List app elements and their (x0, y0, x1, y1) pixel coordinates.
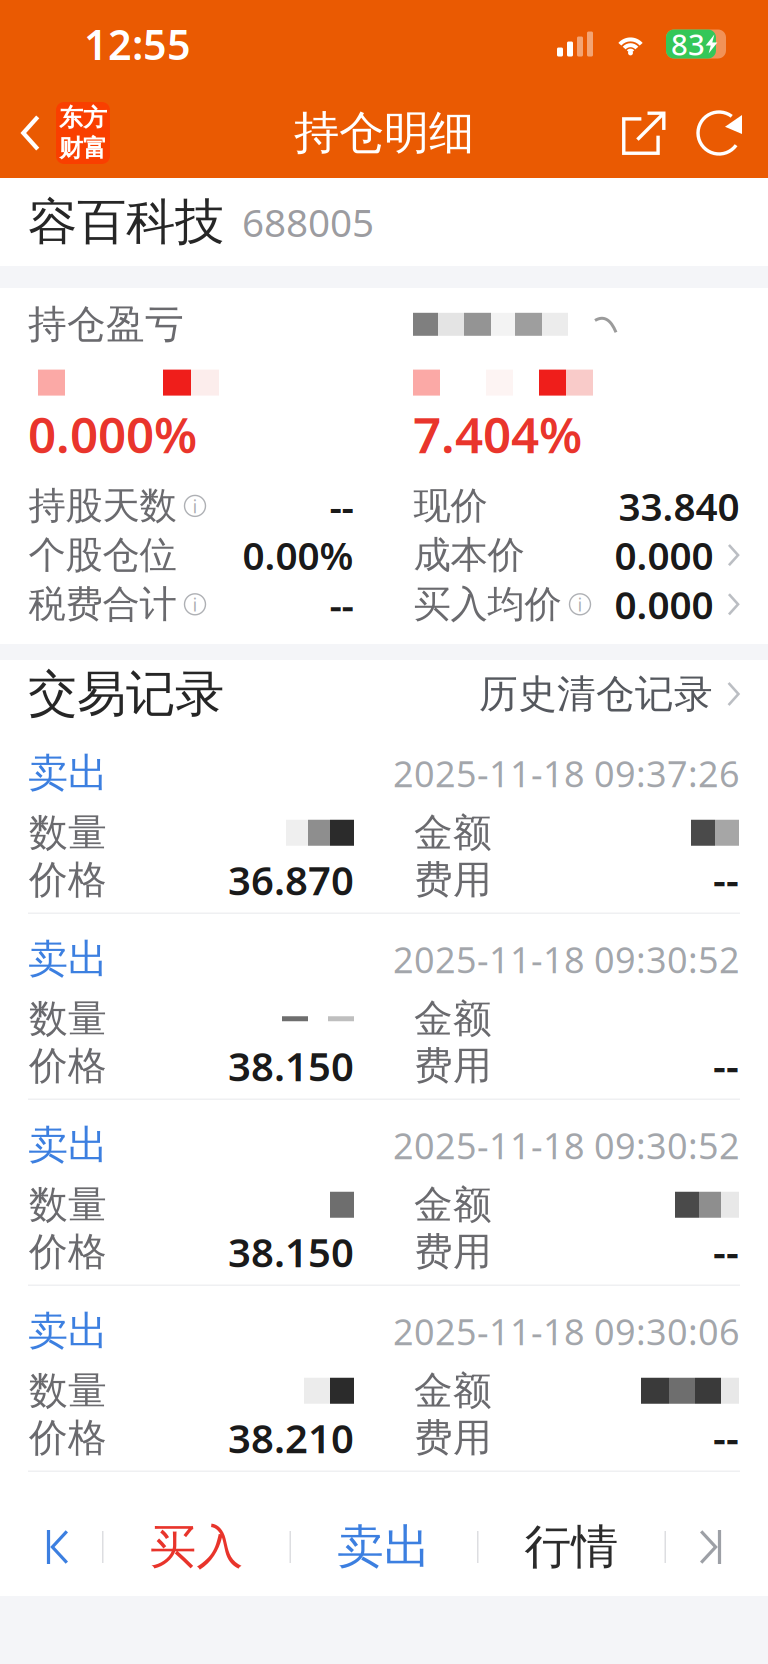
staticText: 38.150 (228, 1225, 354, 1278)
staticText: 数量 (29, 809, 107, 856)
staticText: 38.210 (228, 1411, 354, 1464)
staticText: 金额 (414, 995, 492, 1042)
staticText: 2025-11-18 09:30:52 (393, 1121, 740, 1169)
staticText: 数量 (29, 1181, 107, 1228)
staticText: 卖出 (28, 1121, 108, 1170)
staticText: 38.150 (228, 1039, 354, 1092)
button[interactable]: 行情 (478, 1499, 664, 1595)
staticText: 财富 (59, 133, 107, 163)
button[interactable]: 买入 (103, 1499, 289, 1595)
staticText: 金额 (414, 809, 492, 856)
staticText: 卖出 (28, 935, 108, 984)
staticText: 价格 (29, 1042, 107, 1089)
staticText: 33.840 (618, 480, 739, 531)
staticText: 卖出 (337, 1518, 431, 1576)
staticText: i (192, 592, 197, 617)
staticText: 容百科技 (28, 192, 224, 252)
staticText: 费用 (414, 856, 492, 903)
staticText: 0.000 (614, 529, 713, 581)
button[interactable]: 分享 (606, 99, 682, 167)
button[interactable]: 卖出 (0, 1100, 768, 1284)
staticText: 交易记录 (28, 664, 224, 724)
staticText: 价格 (29, 856, 107, 903)
staticText: -- (713, 853, 739, 906)
staticText: 买入均价 (413, 581, 561, 627)
staticText: 7.404% (413, 401, 582, 467)
button[interactable]: 卖出 (0, 1286, 768, 1470)
staticText: 2025-11-18 09:37:26 (393, 749, 740, 797)
staticText: 金额 (414, 1367, 492, 1414)
staticText: i (577, 592, 582, 617)
staticText: 持仓明细 (294, 105, 474, 161)
staticText: 行情 (524, 1518, 618, 1576)
button[interactable]: 卖出 (0, 914, 768, 1098)
staticText: 卖出 (28, 749, 108, 798)
staticText: 费用 (414, 1414, 492, 1461)
staticText: 卖出 (28, 1307, 108, 1356)
staticText: 价格 (29, 1414, 107, 1461)
staticText: 历史清仓记录 (479, 670, 713, 718)
button[interactable]: 刷新 (682, 98, 756, 168)
staticText: 688005 (242, 196, 374, 248)
staticText: 持股天数 (28, 483, 176, 529)
staticText: -- (713, 1225, 739, 1278)
staticText: -- (329, 579, 353, 630)
staticText: 83 (671, 24, 705, 63)
staticText: -- (329, 480, 353, 531)
button[interactable]: 历史清仓记录 (479, 670, 740, 718)
staticText: 2025-11-18 09:30:52 (393, 935, 740, 983)
staticText: -- (713, 1039, 739, 1092)
staticText: 2025-11-18 09:30:06 (393, 1307, 740, 1355)
button[interactable]: 下一个 (666, 1499, 754, 1595)
button[interactable]: 卖出 (0, 728, 768, 912)
staticText: 金额 (414, 1181, 492, 1228)
staticText: 0.000 (614, 579, 713, 630)
staticText: 数量 (29, 995, 107, 1042)
staticText: 税费合计 (28, 581, 176, 627)
staticText: -- (713, 1411, 739, 1464)
staticText: i (192, 493, 197, 518)
button[interactable]: 卖出 (291, 1499, 477, 1595)
button[interactable]: 返回东方财富 (0, 94, 126, 172)
button[interactable]: 上一个 (14, 1499, 102, 1595)
staticText: 持仓盈亏 (28, 301, 184, 348)
staticText: 现价 (413, 483, 487, 529)
staticText: 费用 (414, 1228, 492, 1275)
staticText: 买入 (149, 1518, 243, 1576)
staticText: 12:55 (84, 17, 191, 71)
staticText: 成本价 (413, 532, 524, 578)
staticText: 东方 (59, 103, 107, 132)
staticText: 个股仓位 (28, 532, 176, 578)
staticText: 数量 (29, 1367, 107, 1414)
staticText: 价格 (29, 1228, 107, 1275)
staticText: 36.870 (228, 853, 354, 906)
staticText: 0.000% (28, 401, 197, 467)
staticText: 0.00% (242, 529, 353, 581)
staticText: 费用 (414, 1042, 492, 1089)
